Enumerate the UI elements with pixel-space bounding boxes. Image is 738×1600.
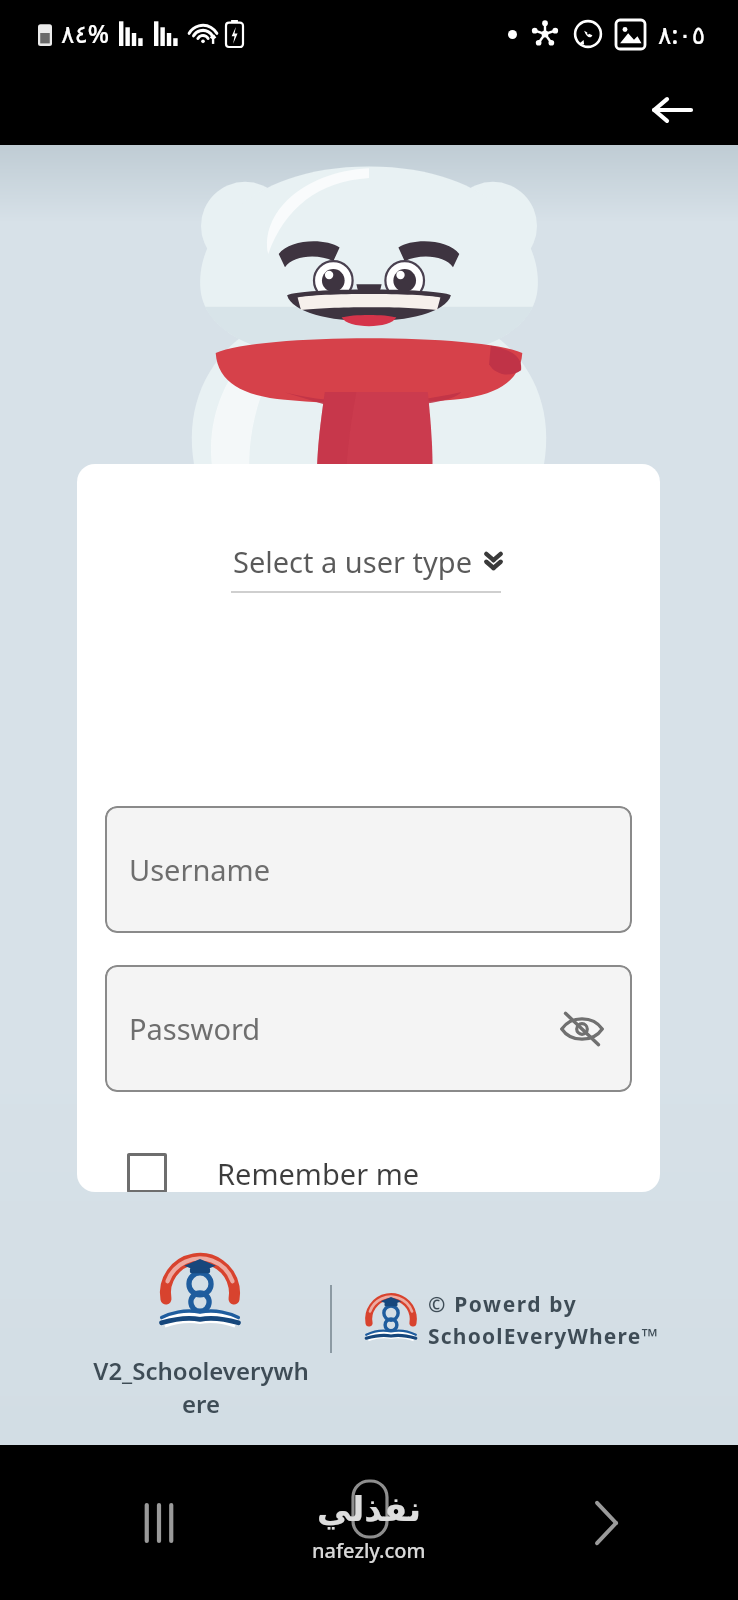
button[interactable]: Select a user type (233, 542, 503, 593)
button[interactable]: Username (105, 806, 632, 933)
staticText: V2_Schooleverywhere (90, 1354, 312, 1420)
staticText: © Powerd by (428, 1290, 578, 1319)
staticText: nafezly.com (312, 1537, 426, 1564)
button[interactable]: Back (637, 76, 705, 144)
staticText: Remember me (217, 1154, 420, 1192)
staticText: ٨٤% (61, 16, 110, 50)
staticText: Password (129, 1009, 261, 1048)
staticText: Select a user type (233, 542, 472, 581)
staticText: Username (129, 850, 271, 889)
button[interactable]: Password (105, 965, 632, 1092)
button[interactable]: Back (569, 1486, 643, 1560)
button[interactable]: Remember me (127, 1142, 420, 1192)
staticText: نفذلي (317, 1489, 422, 1529)
button[interactable]: Show password (556, 1003, 608, 1055)
button[interactable]: Recents (122, 1486, 196, 1560)
staticText: SchoolEveryWhere™ (428, 1322, 659, 1351)
staticText: ٨:٠٥ (658, 17, 706, 51)
